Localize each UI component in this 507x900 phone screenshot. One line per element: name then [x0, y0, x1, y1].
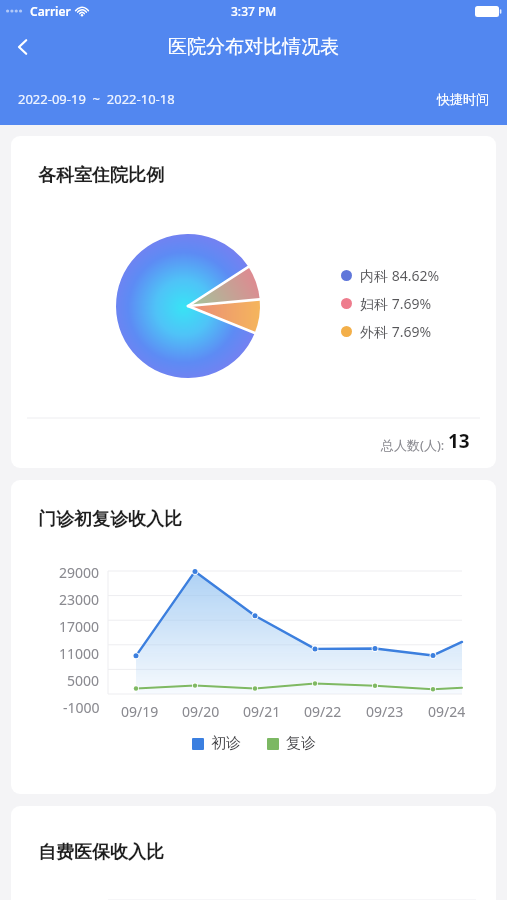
staticText: 复诊: [286, 734, 316, 753]
button[interactable]: Back: [0, 24, 46, 70]
staticText: Carrier: [30, 3, 71, 19]
staticText: 快捷时间: [437, 91, 489, 107]
staticText: 09/21: [243, 702, 281, 721]
staticText: 09/23: [366, 702, 404, 721]
staticText: 内科 84.62%: [360, 266, 440, 285]
button[interactable]: 快捷时间: [437, 91, 489, 107]
staticText: 09/19: [121, 702, 159, 721]
staticText: 门诊初复诊收入比: [38, 508, 182, 531]
staticText: 2022-09-19 ~ 2022-10-18: [18, 90, 175, 108]
staticText: 自费医保收入比: [38, 841, 164, 864]
button[interactable]: 2022-09-19 ~ 2022-10-18: [18, 90, 175, 108]
staticText: 09/24: [428, 702, 466, 721]
staticText: 09/20: [182, 702, 220, 721]
button[interactable]: 初诊: [192, 734, 241, 753]
staticText: 13: [448, 428, 470, 454]
staticText: 29000: [59, 563, 100, 582]
staticText: 总人数(人):: [381, 436, 448, 454]
staticText: 09/22: [304, 702, 342, 721]
staticText: 23000: [59, 590, 100, 609]
staticText: -1000: [63, 698, 100, 717]
staticText: 医院分布对比情况表: [168, 35, 339, 59]
staticText: 各科室住院比例: [38, 164, 164, 187]
staticText: 5000: [67, 671, 100, 690]
staticText: 初诊: [211, 734, 241, 753]
staticText: 11000: [59, 644, 100, 663]
staticText: 17000: [59, 617, 100, 636]
staticText: 外科 7.69%: [360, 322, 432, 341]
button[interactable]: 复诊: [267, 734, 316, 753]
staticText: 妇科 7.69%: [360, 294, 432, 313]
staticText: 3:37 PM: [231, 3, 277, 19]
